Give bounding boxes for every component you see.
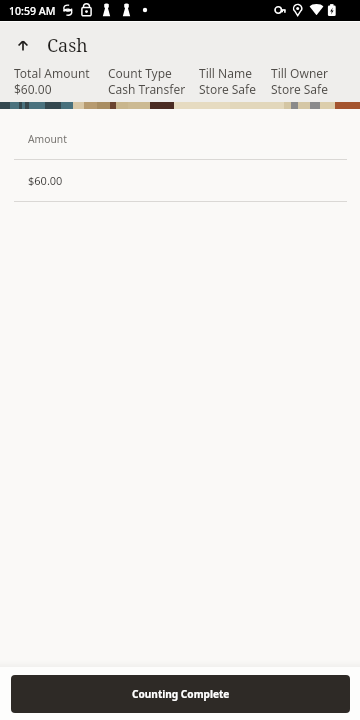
staticText: Total Amount	[14, 65, 90, 81]
staticText: Count Type	[108, 65, 172, 81]
staticText: Amount	[28, 132, 67, 146]
staticText: $60.00	[14, 81, 52, 97]
staticText: Till Owner	[271, 65, 329, 81]
button[interactable]: $60.00	[0, 160, 360, 201]
button[interactable]: Back	[0, 22, 46, 65]
staticText: Counting Complete	[132, 687, 230, 701]
staticText: Cash Transfer	[108, 81, 186, 97]
button[interactable]: Amount	[0, 122, 360, 159]
staticText: Store Safe	[199, 81, 257, 97]
staticText: $60.00	[28, 173, 63, 188]
staticText: Cash	[47, 33, 88, 58]
staticText: Store Safe	[271, 81, 329, 97]
staticText: Till Name	[199, 65, 252, 81]
button[interactable]: Counting Complete	[11, 675, 350, 713]
staticText: 10:59 AM	[9, 4, 56, 18]
